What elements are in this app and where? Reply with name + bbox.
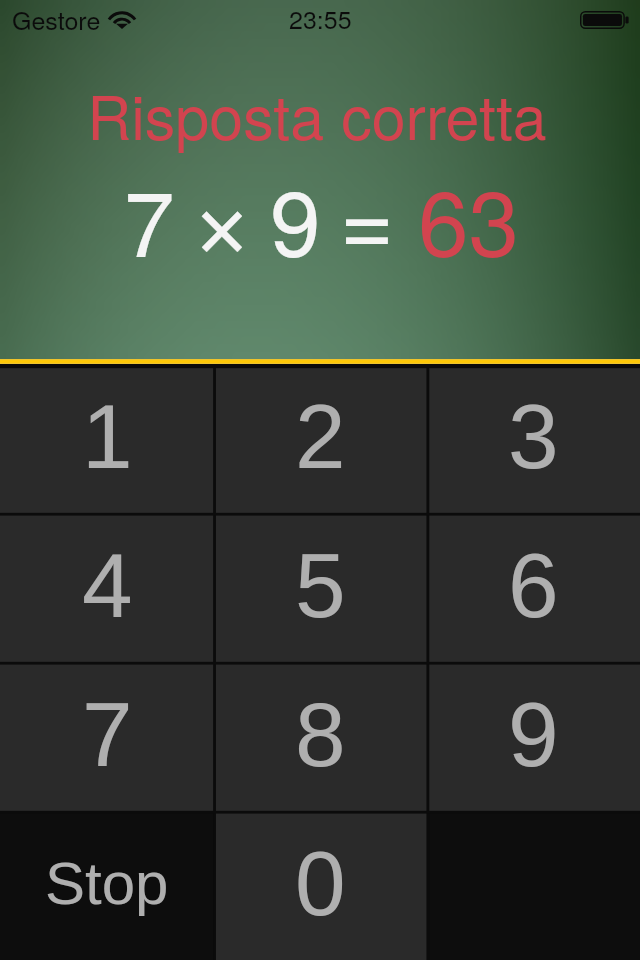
other: Battery full xyxy=(580,11,629,29)
staticText: 63 xyxy=(418,153,520,283)
staticText: 5 xyxy=(295,535,346,637)
button[interactable]: 2 xyxy=(214,364,427,513)
staticText: 8 xyxy=(295,684,346,786)
button[interactable]: 1 xyxy=(0,364,214,513)
staticText: 1 xyxy=(82,386,133,488)
staticText: 7 xyxy=(124,153,175,283)
button[interactable]: 8 xyxy=(214,662,427,811)
button[interactable]: Stop xyxy=(0,811,214,960)
button[interactable]: 7 xyxy=(0,662,214,811)
staticText: 4 xyxy=(82,535,133,637)
staticText: × xyxy=(196,167,249,291)
staticText: Risposta corretta xyxy=(87,70,547,157)
staticText: 6 xyxy=(508,535,559,637)
button[interactable]: Gestore xyxy=(12,1,101,37)
other: Wi-Fi signal xyxy=(109,10,135,29)
staticText: 7 xyxy=(82,684,133,786)
staticText: = xyxy=(341,167,394,291)
button[interactable]: 5 xyxy=(214,513,427,662)
staticText: 0 xyxy=(295,833,346,935)
staticText: Stop xyxy=(45,850,169,917)
staticText: 9 xyxy=(508,684,559,786)
staticText: 23:55 xyxy=(289,0,352,36)
button[interactable]: 9 xyxy=(427,662,640,811)
staticText: 9 xyxy=(270,153,321,283)
button[interactable]: 4 xyxy=(0,513,214,662)
staticText: 2 xyxy=(295,386,346,488)
button[interactable]: 6 xyxy=(427,513,640,662)
button[interactable]: 3 xyxy=(427,364,640,513)
button[interactable]: 0 xyxy=(214,811,427,960)
staticText: 3 xyxy=(508,386,559,488)
